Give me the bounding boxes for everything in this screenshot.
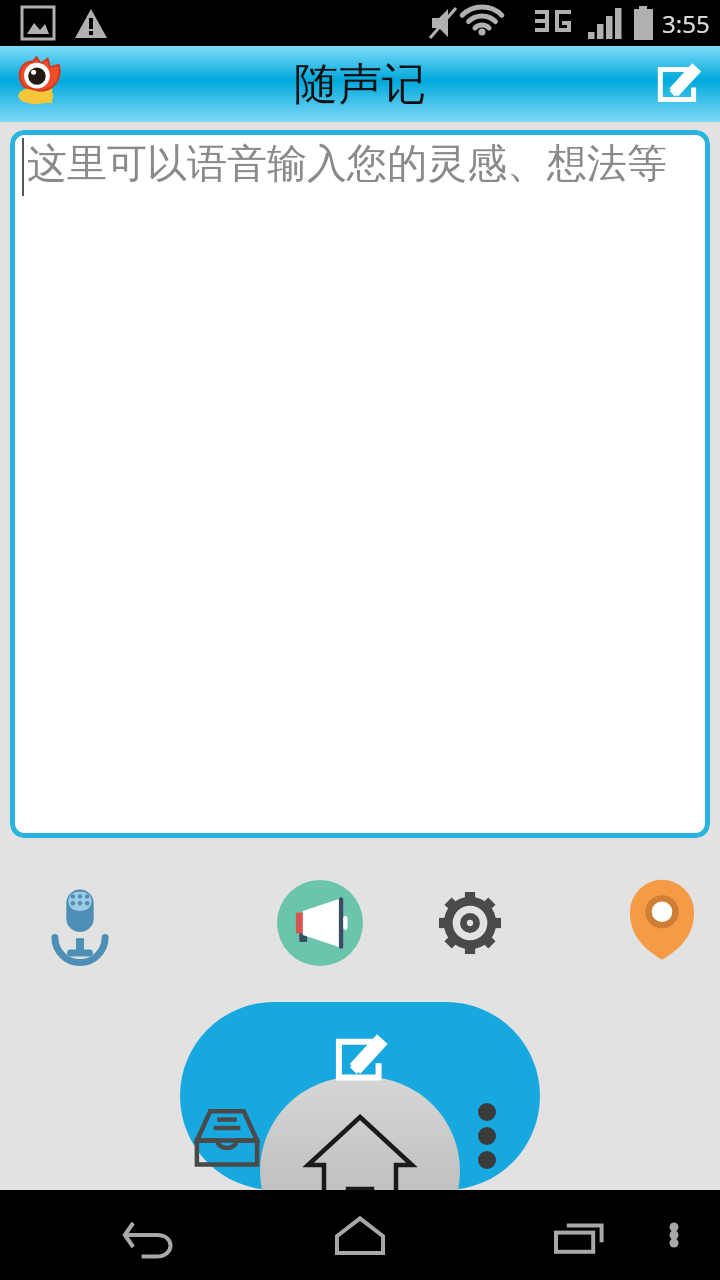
button[interactable]: Back xyxy=(120,1205,180,1265)
button[interactable]: More options xyxy=(467,1102,507,1142)
button[interactable]: Recent apps xyxy=(550,1205,610,1265)
button[interactable]: Location xyxy=(622,883,702,963)
staticText: 这里可以语音输入您的灵感、想法等 xyxy=(27,138,667,188)
staticText: 随声记 xyxy=(294,57,426,112)
button[interactable]: Logo xyxy=(14,56,70,112)
button[interactable]: Menu xyxy=(654,1215,694,1255)
staticText: 3:55 xyxy=(662,7,710,40)
button[interactable]: 这里可以语音输入您的灵感、想法等 xyxy=(10,130,710,838)
button[interactable]: Compose note xyxy=(652,58,704,110)
button[interactable]: Quick menu xyxy=(180,1002,540,1190)
button[interactable]: Home xyxy=(328,1203,392,1267)
button[interactable]: Broadcast xyxy=(277,880,363,966)
button[interactable]: Settings xyxy=(436,889,504,957)
button[interactable]: New note xyxy=(329,1028,391,1090)
button[interactable]: Notes archive xyxy=(192,1100,262,1170)
button[interactable]: Voice input xyxy=(42,885,118,961)
button[interactable]: Home xyxy=(260,1077,460,1265)
